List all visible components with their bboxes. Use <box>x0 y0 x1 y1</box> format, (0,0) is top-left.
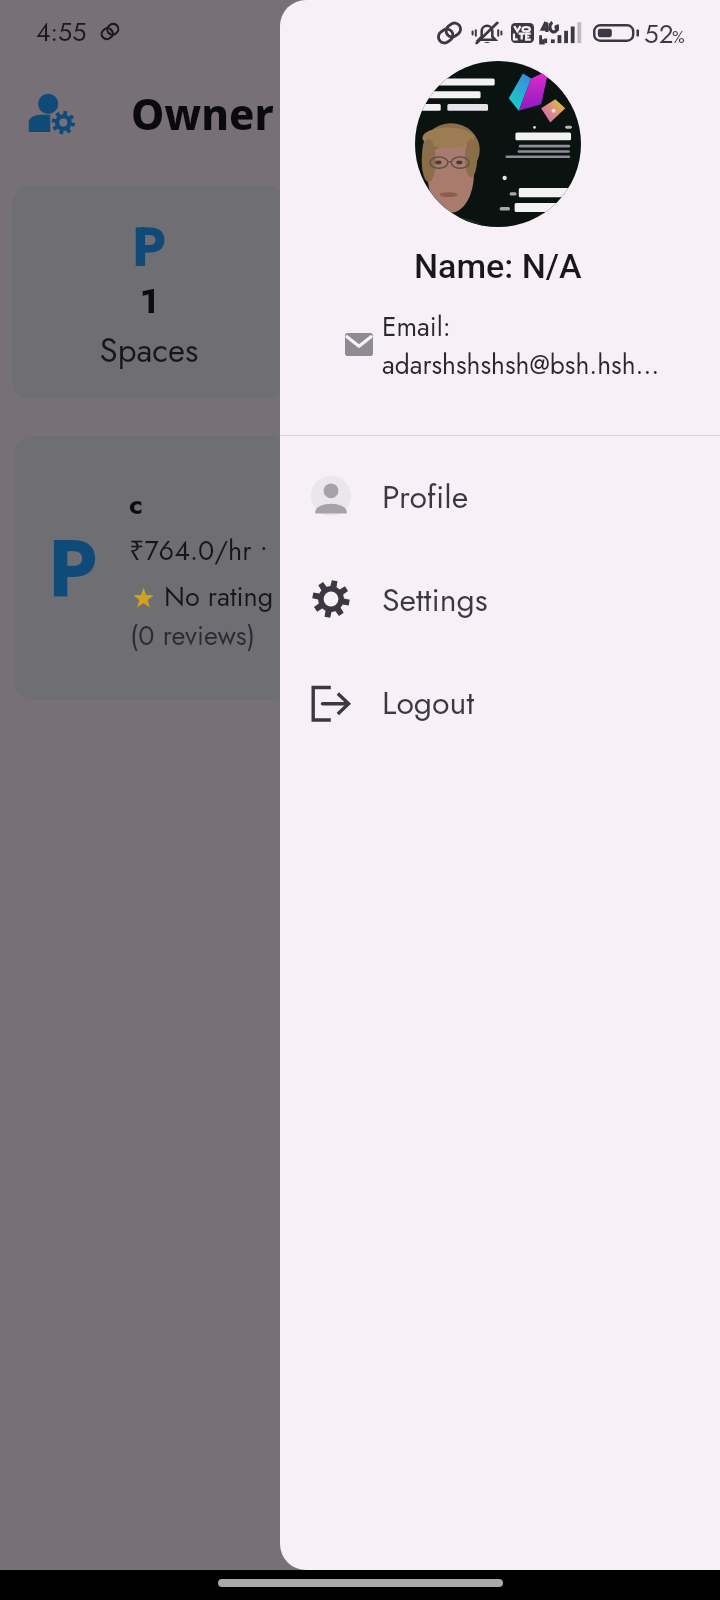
staticText: Owner Dashboard <box>131 85 515 142</box>
staticText: Spaces <box>12 327 286 375</box>
staticText: P <box>12 206 286 287</box>
staticText: % <box>672 25 685 50</box>
button[interactable]: Profile <box>280 445 720 548</box>
button[interactable]: Logout <box>280 651 720 754</box>
staticText: Settings <box>382 577 488 623</box>
button[interactable]: Close navigation drawer <box>0 0 720 1600</box>
staticText: c <box>129 484 143 524</box>
button[interactable]: Settings <box>280 548 720 651</box>
staticText: 52 <box>644 15 674 53</box>
staticText: Name: N/A <box>414 246 582 286</box>
staticText: (0 reviews) <box>130 616 256 655</box>
staticText: Logout <box>382 680 475 726</box>
staticText: ₹764.0/hr • <box>129 531 284 570</box>
staticText: 1 <box>12 277 286 326</box>
staticText: P <box>48 511 98 627</box>
staticText: adarshshshsh@bsh.hsh… <box>382 346 660 384</box>
staticText: No rating <box>164 577 274 616</box>
button[interactable]: Owner profile settings <box>14 82 90 146</box>
button[interactable]: P <box>12 186 286 399</box>
staticText: Profile <box>382 474 469 520</box>
staticText: Email: <box>382 308 451 346</box>
button[interactable]: P <box>15 436 287 700</box>
staticText: 4:55 <box>36 14 87 50</box>
